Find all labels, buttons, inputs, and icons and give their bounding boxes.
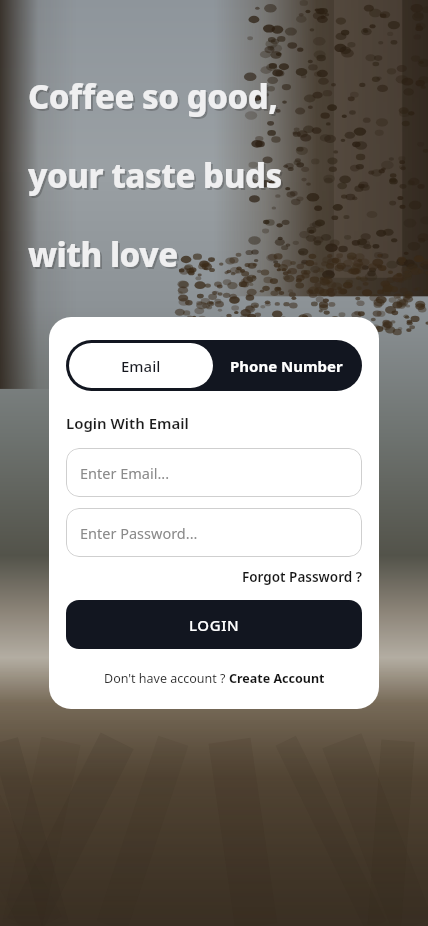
staticText: Enter Email... [80, 463, 170, 483]
staticText: your taste buds [28, 153, 282, 198]
staticText: with love [30, 234, 180, 279]
button[interactable]: Create Account [229, 670, 325, 687]
staticText: Login With Email [66, 413, 189, 433]
staticText: Phone Number [230, 356, 343, 376]
button[interactable]: Email [69, 343, 213, 388]
staticText: your taste buds [30, 155, 284, 200]
button[interactable]: Forgot Password ? [242, 568, 362, 586]
button[interactable]: Phone Number [213, 343, 359, 388]
staticText: Coffee so good, [30, 76, 280, 121]
staticText: Email [121, 356, 161, 376]
button[interactable]: LOGIN [66, 600, 362, 649]
staticText: LOGIN [189, 615, 240, 635]
button[interactable]: Enter Password... [66, 508, 362, 557]
staticText: Enter Password... [80, 523, 198, 543]
staticText: with love [28, 232, 178, 277]
staticText: Coffee so good, [28, 74, 278, 119]
staticText: Don't have account ? [104, 670, 229, 687]
button[interactable]: Enter Email... [66, 448, 362, 497]
